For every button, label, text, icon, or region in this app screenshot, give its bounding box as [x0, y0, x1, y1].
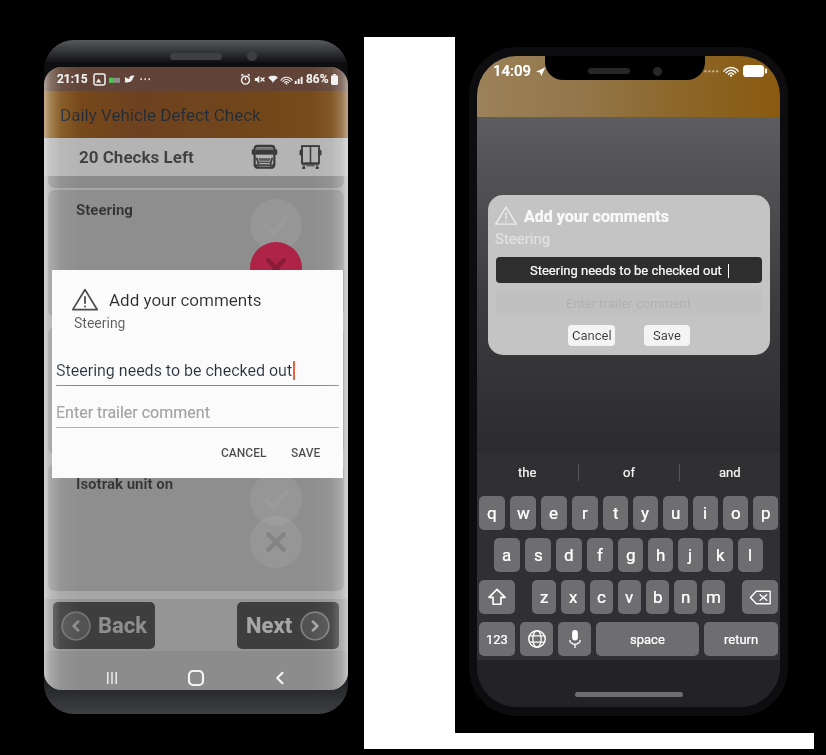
- staticText: Daily Vehicle Defect Check: [60, 105, 261, 125]
- button[interactable]: t: [603, 496, 628, 530]
- button[interactable]: x: [561, 580, 585, 614]
- staticText: g: [626, 545, 636, 565]
- button[interactable]: a: [494, 538, 520, 572]
- staticText: Add your comments: [109, 290, 262, 310]
- staticText: s: [534, 545, 543, 565]
- button[interactable]: c: [590, 580, 613, 614]
- button[interactable]: Fail: [250, 242, 302, 294]
- button[interactable]: Back: [265, 665, 295, 690]
- staticText: 14:09: [493, 62, 532, 80]
- button[interactable]: n: [674, 580, 697, 614]
- staticText: y: [641, 503, 650, 523]
- button[interactable]: h: [648, 538, 673, 572]
- button[interactable]: Pass: [250, 199, 302, 251]
- button[interactable]: s: [525, 538, 551, 572]
- staticText: space: [630, 632, 665, 647]
- staticText: Enter trailer comment: [566, 296, 692, 311]
- button[interactable]: Next: [237, 602, 339, 649]
- staticText: n: [681, 587, 691, 607]
- button[interactable]: Brakes: [48, 327, 344, 454]
- staticText: Enter trailer comment: [56, 403, 210, 422]
- button[interactable]: space: [596, 622, 699, 656]
- staticText: SAVE: [291, 446, 321, 460]
- button[interactable]: r: [572, 496, 598, 530]
- staticText: m: [706, 587, 721, 607]
- button[interactable]: i: [693, 496, 718, 530]
- button[interactable]: b: [646, 580, 669, 614]
- button[interactable]: k: [708, 538, 733, 572]
- staticText: Cancel: [572, 328, 612, 343]
- staticText: b: [653, 587, 663, 607]
- staticText: and: [719, 465, 741, 480]
- button[interactable]: Fail: [250, 379, 302, 431]
- button[interactable]: j: [678, 538, 703, 572]
- button[interactable]: y: [633, 496, 658, 530]
- button[interactable]: Trailer: [295, 142, 325, 172]
- button[interactable]: Cancel: [568, 325, 615, 346]
- staticText: a: [502, 545, 512, 565]
- staticText: Steering: [495, 230, 551, 248]
- button[interactable]: e: [541, 496, 567, 530]
- button[interactable]: Dictate: [558, 622, 591, 656]
- button[interactable]: Save: [644, 325, 690, 346]
- staticText: d: [564, 545, 574, 565]
- staticText: Steering: [76, 201, 133, 219]
- button[interactable]: 123: [479, 622, 515, 656]
- button[interactable]: Change keyboard: [520, 622, 553, 656]
- button[interactable]: d: [556, 538, 582, 572]
- button[interactable]: of: [579, 453, 679, 492]
- staticText: the: [518, 465, 537, 480]
- button[interactable]: Steering needs to be checked out: [496, 257, 762, 283]
- staticText: of: [623, 465, 635, 480]
- button[interactable]: Pass: [250, 473, 302, 525]
- staticText: e: [549, 503, 559, 523]
- button[interactable]: CANCEL: [213, 438, 275, 468]
- staticText: r: [582, 503, 588, 523]
- button[interactable]: z: [532, 580, 556, 614]
- button[interactable]: and: [680, 453, 780, 492]
- button[interactable]: SAVE: [283, 438, 329, 468]
- button[interactable]: Steering: [48, 190, 344, 317]
- staticText: Steering: [74, 315, 126, 331]
- button[interactable]: u: [663, 496, 688, 530]
- button[interactable]: q: [479, 496, 505, 530]
- staticText: 20 Checks Left: [79, 147, 194, 167]
- staticText: 123: [486, 632, 508, 647]
- button[interactable]: m: [702, 580, 725, 614]
- button[interactable]: Vehicle: [249, 142, 279, 172]
- staticText: i: [703, 503, 708, 523]
- button[interactable]: p: [753, 496, 778, 530]
- staticText: v: [625, 587, 634, 607]
- staticText: 86%: [306, 72, 329, 86]
- button[interactable]: Backspace: [742, 580, 778, 614]
- button[interactable]: f: [587, 538, 613, 572]
- staticText: Next: [246, 613, 293, 639]
- button[interactable]: Home: [181, 665, 211, 690]
- button[interactable]: Fail: [250, 516, 302, 568]
- button[interactable]: w: [510, 496, 536, 530]
- staticText: l: [748, 545, 753, 565]
- staticText: k: [716, 545, 725, 565]
- staticText: x: [569, 587, 578, 607]
- button[interactable]: o: [723, 496, 748, 530]
- button[interactable]: Recents: [97, 665, 127, 690]
- staticText: Add your comments: [524, 207, 669, 226]
- button[interactable]: l: [738, 538, 763, 572]
- staticText: w: [517, 503, 530, 523]
- staticText: q: [487, 503, 497, 523]
- button[interactable]: v: [618, 580, 641, 614]
- button[interactable]: g: [618, 538, 643, 572]
- staticText: Back: [98, 613, 148, 639]
- button[interactable]: Shift: [479, 580, 515, 614]
- button[interactable]: Pass: [250, 336, 302, 388]
- button[interactable]: Isotrak unit on: [48, 464, 344, 591]
- staticText: ⋯: [139, 72, 151, 86]
- button[interactable]: the: [477, 453, 578, 492]
- button[interactable]: return: [704, 622, 778, 656]
- staticText: 21:15: [57, 72, 88, 86]
- staticText: Steering needs to be checked out: [56, 361, 293, 380]
- button[interactable]: Back: [53, 602, 155, 649]
- staticText: CANCEL: [221, 446, 267, 460]
